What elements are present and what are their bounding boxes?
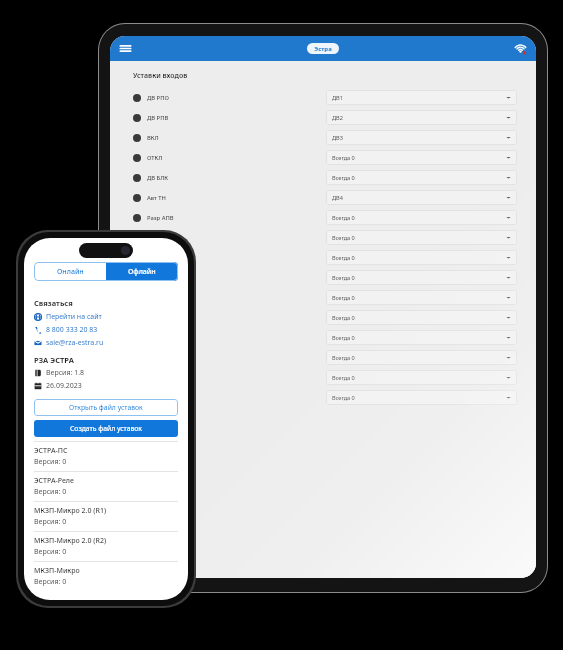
button[interactable]: ВКЛ — [133, 128, 253, 148]
button[interactable]: Авт ТН — [133, 188, 253, 208]
staticText: Онлайн — [57, 267, 84, 277]
staticText: РЗА ЭСТРА — [34, 355, 74, 365]
staticText: Всегда 0 — [332, 174, 506, 182]
button[interactable]: Всегда 0 — [326, 290, 517, 305]
staticText: ЭСТРА-Реле — [34, 476, 74, 486]
staticText: Авт ТН — [147, 194, 166, 202]
button[interactable]: ЭСТРА-Реле — [34, 471, 178, 501]
button[interactable]: Онлайн — [34, 262, 106, 281]
staticText: 8 800 333 20 83 — [46, 325, 98, 335]
staticText: Версия: 1.8 — [46, 368, 85, 378]
button[interactable]: Перейти на сайт — [34, 312, 178, 322]
button[interactable]: Открыть файл уставок — [34, 399, 178, 416]
staticText: ДВ2 — [332, 114, 506, 122]
staticText: Версия: 0 — [34, 547, 67, 557]
staticText: Версия: 0 — [34, 577, 67, 587]
button[interactable]: ДВ РПО — [133, 88, 253, 108]
staticText: Создать файл уставок — [70, 424, 142, 433]
button[interactable]: Всегда 0 — [326, 350, 517, 365]
staticText: Всегда 0 — [332, 274, 506, 282]
staticText: Открыть файл уставок — [69, 403, 143, 412]
staticText: Всегда 0 — [332, 374, 506, 382]
staticText: Уставки входов — [133, 71, 188, 81]
staticText: Связаться — [34, 298, 73, 308]
staticText: Перейти на сайт — [46, 312, 102, 322]
button[interactable]: Офлайн — [106, 262, 178, 281]
button[interactable]: Wi-Fi status — [514, 42, 527, 55]
button[interactable]: Создать файл уставок — [34, 420, 178, 437]
button[interactable]: МКЗП-Микро — [34, 561, 178, 591]
staticText: ЭСТРА-ПС — [34, 446, 68, 456]
staticText: Всегда 0 — [332, 354, 506, 362]
staticText: ДВ РПО — [147, 94, 169, 102]
button[interactable]: Всегда 0 — [326, 270, 517, 285]
staticText: 26.09.2023 — [46, 381, 82, 391]
staticText: Офлайн — [128, 267, 156, 277]
button[interactable]: Всегда 0 — [326, 210, 517, 225]
staticText: ДВ4 — [332, 194, 506, 202]
staticText: ДВ РПВ — [147, 114, 169, 122]
button[interactable]: Всегда 0 — [326, 170, 517, 185]
staticText: ДВ БЛК — [147, 174, 169, 182]
staticText: МКЗП-Микро 2.0 (R1) — [34, 506, 107, 516]
button[interactable]: МКЗП-Микро 2.0 (R1) — [34, 501, 178, 531]
staticText: МКЗП-Микро — [34, 566, 80, 576]
button[interactable]: 8 800 333 20 83 — [34, 325, 178, 335]
staticText: Всегда 0 — [332, 234, 506, 242]
staticText: ДВ3 — [332, 134, 506, 142]
button[interactable]: ДВ ВО — [133, 228, 253, 248]
staticText: ВКЛ — [147, 134, 159, 142]
button[interactable]: Всегда 0 — [326, 310, 517, 325]
staticText: sale@rza-estra.ru — [46, 338, 104, 348]
button[interactable]: Всегда 0 — [326, 150, 517, 165]
staticText: Версия: 0 — [34, 487, 67, 497]
staticText: Всегда 0 — [332, 334, 506, 342]
button[interactable]: Всегда 0 — [326, 250, 517, 265]
button[interactable]: ДВ1 — [326, 90, 517, 105]
staticText: Эстра — [314, 45, 332, 53]
staticText: ДВ ВО — [147, 234, 165, 242]
button[interactable]: ДВ4 — [326, 190, 517, 205]
button[interactable]: ОТКЛ — [133, 148, 253, 168]
staticText: Версия: 0 — [34, 517, 67, 527]
button[interactable]: Всегда 0 — [326, 230, 517, 245]
button[interactable]: Разр АПВ — [133, 208, 253, 228]
staticText: Всегда 0 — [332, 394, 506, 402]
button[interactable]: Menu — [119, 42, 132, 55]
staticText: Всегда 0 — [332, 214, 506, 222]
staticText: Всегда 0 — [332, 154, 506, 162]
button[interactable]: Всегда 0 — [326, 370, 517, 385]
staticText: ОТКЛ — [147, 154, 163, 162]
button[interactable]: ЭСТРА-ПС — [34, 441, 178, 471]
staticText: Версия: 0 — [34, 457, 67, 467]
button[interactable]: ДВ РПВ — [133, 108, 253, 128]
staticText: Всегда 0 — [332, 314, 506, 322]
button[interactable]: Всегда 0 — [326, 330, 517, 345]
button[interactable]: ДВ БЛК — [133, 168, 253, 188]
button[interactable]: Всегда 0 — [326, 390, 517, 405]
button[interactable]: МКЗП-Микро 2.0 (R2) — [34, 531, 178, 561]
staticText: Всегда 0 — [332, 254, 506, 262]
staticText: ДВ1 — [332, 94, 506, 102]
staticText: МКЗП-Микро 2.0 (R2) — [34, 536, 107, 546]
button[interactable]: sale@rza-estra.ru — [34, 338, 178, 348]
button[interactable]: ДВ3 — [326, 130, 517, 145]
staticText: Разр АПВ — [147, 214, 174, 222]
button[interactable]: ДВ2 — [326, 110, 517, 125]
staticText: Всегда 0 — [332, 294, 506, 302]
